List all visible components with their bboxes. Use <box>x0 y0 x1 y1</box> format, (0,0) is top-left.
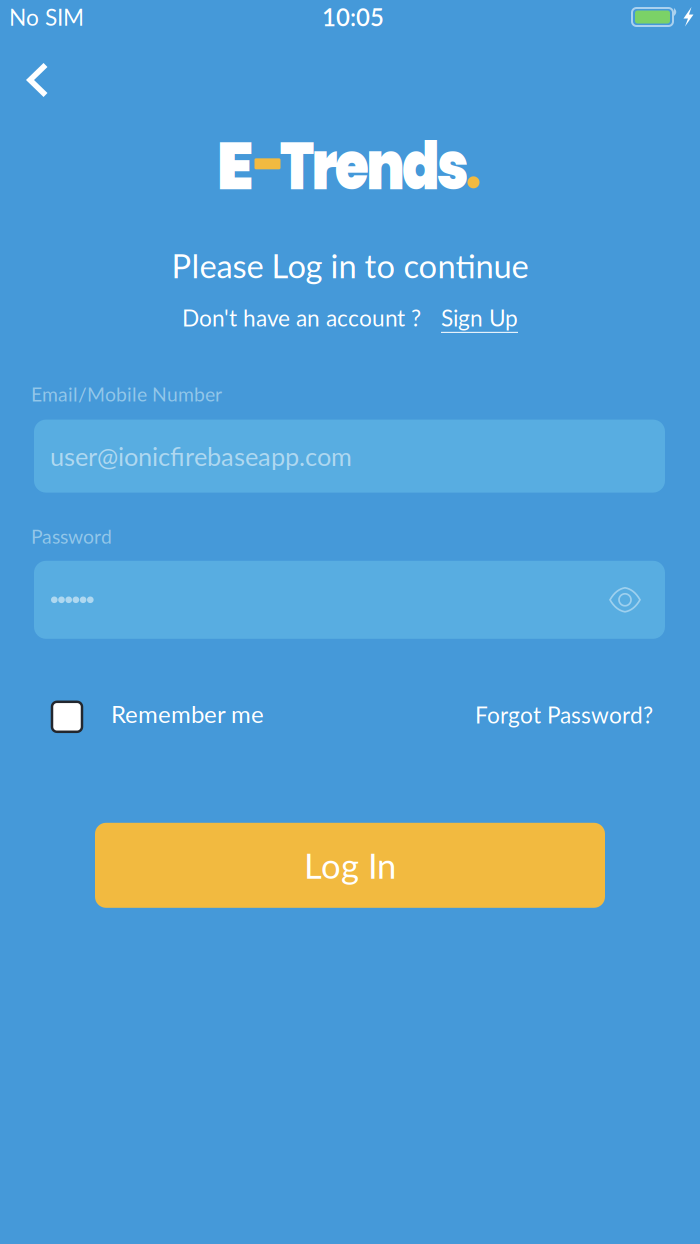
staticText: Remember me <box>111 699 264 728</box>
staticText: Log In <box>304 844 396 886</box>
staticText: Email/Mobile Number <box>31 382 222 406</box>
staticText: 10:05 <box>322 3 384 31</box>
button[interactable]: Log In <box>95 823 605 908</box>
staticText: Don't have an account ? <box>182 304 421 331</box>
staticText: Forgot Password? <box>475 701 653 728</box>
staticText: Password <box>31 525 112 548</box>
button[interactable]: Sign Up <box>441 304 518 331</box>
button[interactable]: Forgot Password? <box>478 698 656 725</box>
staticText: E <box>216 119 253 213</box>
button[interactable]: Back <box>0 34 73 116</box>
staticText: user@ionicfirebaseapp.com <box>50 441 352 471</box>
staticText: Sign Up <box>441 304 518 331</box>
staticText: No SIM <box>9 3 84 31</box>
staticText: Please Log in to continue <box>171 246 528 285</box>
button[interactable]: Remember me <box>48 697 264 727</box>
button[interactable]: Show password <box>609 587 641 613</box>
staticText: Trends <box>280 119 508 213</box>
